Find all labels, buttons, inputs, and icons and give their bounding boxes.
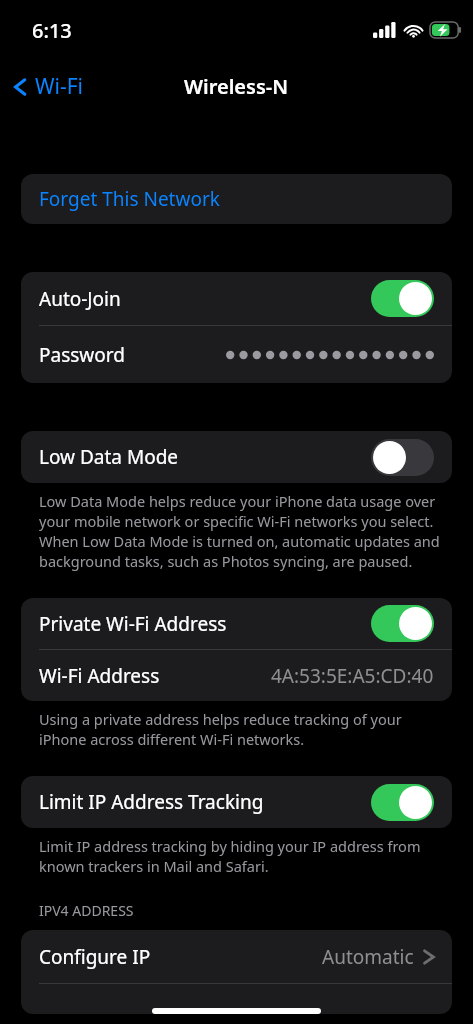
- staticText: IPV4 ADDRESS: [39, 901, 134, 920]
- button[interactable]: Auto-Join: [21, 272, 452, 325]
- button[interactable]: Wi-Fi Address: [21, 650, 452, 701]
- button[interactable]: Wi-Fi: [12, 72, 84, 101]
- staticText: Configure IP: [39, 944, 151, 970]
- staticText: Auto-Join: [39, 286, 121, 312]
- staticText: Limit IP address tracking by hiding your…: [39, 836, 445, 876]
- button[interactable]: Private Wi-Fi Address: [21, 598, 452, 649]
- button[interactable]: Password: [21, 326, 452, 383]
- staticText: Automatic: [322, 944, 414, 970]
- staticText: Limit IP Address Tracking: [39, 789, 264, 815]
- button[interactable]: Configure IP: [21, 930, 452, 983]
- staticText: 6:13: [32, 17, 72, 44]
- staticText: Using a private address helps reduce tra…: [39, 709, 445, 749]
- staticText: 4A:53:5E:A5:CD:40: [271, 663, 434, 689]
- button[interactable]: Auto-Join toggle: [371, 280, 434, 317]
- button[interactable]: Private Wi-Fi Address toggle: [371, 605, 434, 642]
- staticText: Wi-Fi: [35, 72, 84, 101]
- staticText: Wi-Fi Address: [39, 663, 160, 689]
- staticText: Low Data Mode: [39, 444, 179, 470]
- staticText: Forget This Network: [39, 186, 220, 212]
- button[interactable]: Low Data Mode toggle: [371, 439, 434, 476]
- button[interactable]: Forget This Network: [21, 174, 452, 224]
- staticText: Password: [39, 342, 125, 368]
- staticText: Low Data Mode helps reduce your iPhone d…: [39, 491, 445, 571]
- staticText: Wireless-N: [184, 73, 289, 100]
- button[interactable]: Low Data Mode: [21, 431, 452, 483]
- staticText: Private Wi-Fi Address: [39, 611, 227, 637]
- button[interactable]: Limit IP Address Tracking toggle: [371, 784, 434, 821]
- button[interactable]: Limit IP Address Tracking: [21, 776, 452, 828]
